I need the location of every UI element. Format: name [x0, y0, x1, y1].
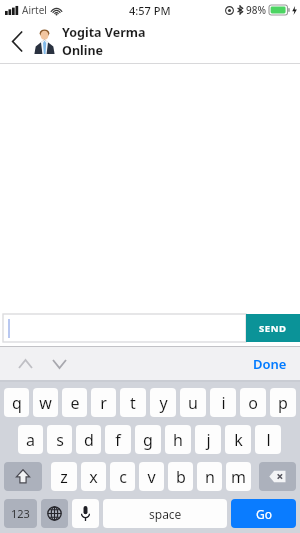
- button[interactable]: c: [110, 462, 135, 491]
- staticText: w: [39, 392, 52, 414]
- button[interactable]: m: [226, 462, 251, 491]
- staticText: d: [84, 429, 94, 451]
- staticText: y: [159, 392, 168, 414]
- button[interactable]: a: [18, 425, 43, 454]
- button[interactable]: Dictate: [72, 499, 99, 528]
- button[interactable]: u: [180, 388, 206, 417]
- button[interactable]: t: [120, 388, 146, 417]
- staticText: t: [130, 392, 136, 414]
- button[interactable]: o: [240, 388, 266, 417]
- button[interactable]: b: [168, 462, 193, 491]
- button[interactable]: z: [51, 462, 77, 491]
- staticText: a: [26, 429, 35, 451]
- staticText: Yogita Verma: [62, 24, 146, 41]
- staticText: o: [248, 392, 258, 414]
- staticText: k: [234, 429, 243, 451]
- staticText: Online: [62, 42, 104, 59]
- button[interactable]: w: [33, 388, 58, 417]
- button[interactable]: j: [195, 425, 221, 454]
- staticText: Airtel: [22, 3, 47, 17]
- button[interactable]: 123: [4, 499, 37, 528]
- button[interactable]: Done: [249, 351, 291, 377]
- button[interactable]: SEND: [246, 314, 300, 342]
- button[interactable]: f: [105, 425, 131, 454]
- button[interactable]: y: [150, 388, 176, 417]
- staticText: l: [266, 429, 271, 451]
- button[interactable]: n: [197, 462, 222, 491]
- staticText: g: [143, 429, 153, 451]
- staticText: s: [56, 429, 64, 451]
- button[interactable]: v: [139, 462, 164, 491]
- button[interactable]: Go: [231, 499, 296, 528]
- staticText: i: [221, 392, 226, 414]
- button[interactable]: Previous field: [12, 351, 38, 377]
- button[interactable]: d: [76, 425, 101, 454]
- button[interactable]: x: [81, 462, 106, 491]
- staticText: j: [206, 429, 211, 451]
- staticText: h: [173, 429, 183, 451]
- staticText: 4:57 PM: [129, 3, 171, 18]
- staticText: z: [60, 466, 68, 488]
- button[interactable]: Back: [0, 20, 34, 63]
- button[interactable]: g: [135, 425, 161, 454]
- staticText: c: [119, 466, 127, 488]
- button[interactable]: Shift: [4, 462, 42, 491]
- button[interactable]: Next field: [46, 351, 72, 377]
- staticText: r: [100, 392, 107, 414]
- staticText: e: [70, 392, 80, 414]
- button[interactable]: r: [91, 388, 116, 417]
- staticText: f: [115, 429, 121, 451]
- staticText: 98%: [246, 3, 266, 17]
- button[interactable]: i: [210, 388, 236, 417]
- staticText: m: [231, 466, 246, 488]
- button[interactable]: p: [270, 388, 296, 417]
- staticText: Go: [256, 506, 272, 522]
- button[interactable]: k: [225, 425, 251, 454]
- staticText: p: [278, 392, 288, 414]
- staticText: 123: [11, 506, 30, 521]
- staticText: Done: [253, 355, 287, 373]
- staticText: b: [176, 466, 186, 488]
- button[interactable]: Switch keyboard language: [41, 499, 68, 528]
- button[interactable]: space: [103, 499, 227, 528]
- button[interactable]: e: [62, 388, 87, 417]
- staticText: v: [147, 466, 156, 488]
- button[interactable]: [3, 314, 246, 342]
- staticText: n: [205, 466, 215, 488]
- button[interactable]: l: [255, 425, 281, 454]
- button[interactable]: h: [165, 425, 191, 454]
- staticText: x: [89, 466, 98, 488]
- staticText: q: [12, 392, 22, 414]
- staticText: space: [149, 506, 182, 522]
- button[interactable]: q: [4, 388, 29, 417]
- staticText: u: [188, 392, 198, 414]
- button[interactable]: Backspace: [259, 462, 296, 491]
- staticText: SEND: [259, 322, 287, 335]
- button[interactable]: s: [47, 425, 72, 454]
